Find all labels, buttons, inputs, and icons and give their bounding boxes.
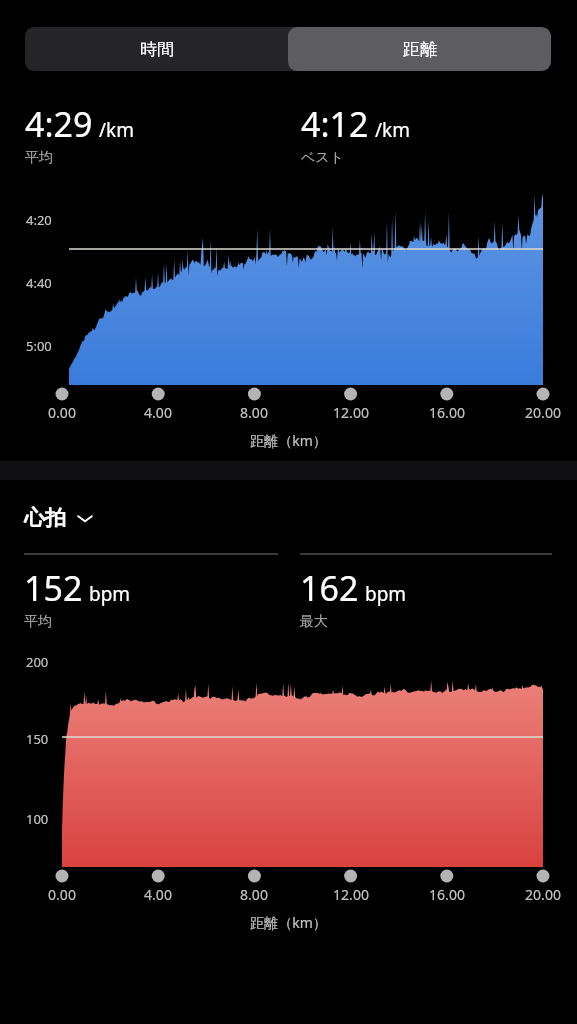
staticText: bpm [365,581,407,607]
staticText: 4.00 [124,885,192,904]
staticText: 0.00 [28,403,96,422]
staticText: 平均 [25,149,53,167]
staticText: /km [99,117,134,143]
staticText: 100 [26,810,49,828]
staticText: 4:20 [26,211,52,229]
staticText: 152 [24,565,83,611]
staticText: 16.00 [413,885,481,904]
staticText: ベスト [301,149,344,167]
staticText: 8.00 [220,403,288,422]
staticText: 16.00 [413,403,481,422]
staticText: 162 [300,565,359,611]
staticText: 4:29 [25,101,93,147]
staticText: 最大 [300,613,328,631]
staticText: 4:12 [301,101,369,147]
staticText: 20.00 [509,885,577,904]
staticText: 12.00 [317,403,385,422]
staticText: /km [375,117,410,143]
button[interactable]: 心拍 セクションを展開 [24,505,95,531]
staticText: 8.00 [220,885,288,904]
staticText: 12.00 [317,885,385,904]
staticText: 150 [26,730,49,748]
staticText: 20.00 [509,403,577,422]
staticText: bpm [89,581,131,607]
staticText: 心拍 [24,505,66,531]
staticText: 距離（km） [0,913,577,932]
staticText: 距離 [403,39,437,60]
staticText: 0.00 [28,885,96,904]
staticText: 時間 [140,39,174,60]
button[interactable]: 時間 [25,27,288,71]
staticText: 4:40 [26,274,52,292]
staticText: 4.00 [124,403,192,422]
staticText: 距離（km） [0,431,577,450]
staticText: 平均 [24,613,52,631]
button[interactable]: 距離 [288,27,551,71]
staticText: 5:00 [26,337,52,355]
staticText: 200 [26,653,49,671]
